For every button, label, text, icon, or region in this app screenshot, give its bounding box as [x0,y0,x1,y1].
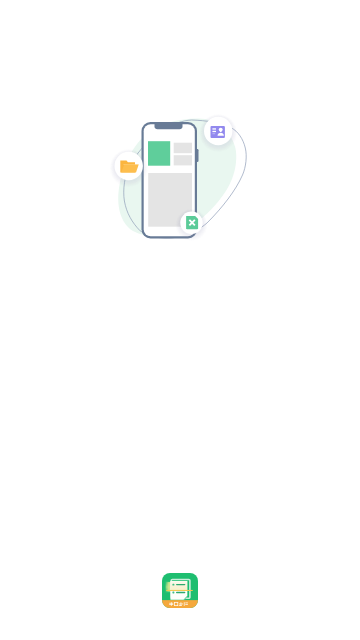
button[interactable]: App icon [162,573,198,608]
